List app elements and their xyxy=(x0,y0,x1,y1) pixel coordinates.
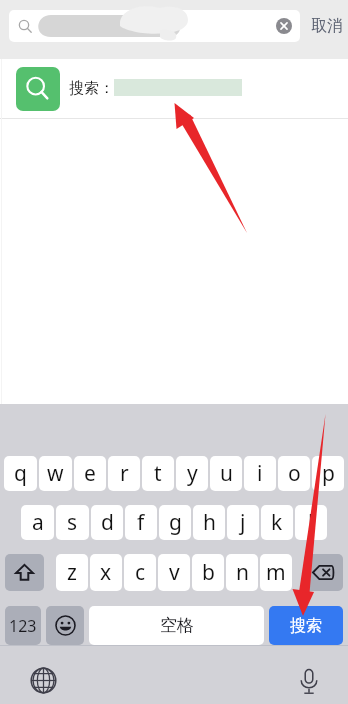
staticText: t xyxy=(154,459,162,488)
button[interactable]: y xyxy=(176,456,208,491)
button[interactable]: v xyxy=(158,554,190,591)
button[interactable]: m xyxy=(260,554,292,591)
staticText: w xyxy=(47,459,64,488)
button[interactable]: o xyxy=(278,456,310,491)
staticText: u xyxy=(220,459,233,488)
staticText: g xyxy=(169,508,182,537)
staticText: b xyxy=(202,558,215,587)
staticText: v xyxy=(169,558,180,587)
button[interactable]: 取消 xyxy=(305,10,348,42)
button[interactable]: a xyxy=(21,505,54,540)
button[interactable]: i xyxy=(244,456,276,491)
button[interactable]: Emoji xyxy=(46,606,84,645)
staticText: k xyxy=(271,508,283,537)
button[interactable]: r xyxy=(108,456,140,491)
button[interactable]: z xyxy=(56,554,88,591)
staticText: l xyxy=(308,508,314,537)
button[interactable]: h xyxy=(193,505,225,540)
button[interactable]: g xyxy=(159,505,191,540)
button[interactable]: j xyxy=(227,505,259,540)
staticText: j xyxy=(240,508,246,537)
staticText: 空格 xyxy=(160,615,194,636)
button[interactable]: e xyxy=(74,456,106,491)
staticText: r xyxy=(120,459,129,488)
button[interactable]: Shift xyxy=(5,554,44,591)
button[interactable]: k xyxy=(261,505,293,540)
button[interactable]: 搜索 xyxy=(269,606,343,645)
button[interactable]: 123 xyxy=(5,606,41,645)
staticText: f xyxy=(137,508,145,537)
button[interactable]: d xyxy=(91,505,123,540)
button[interactable]: n xyxy=(226,554,258,591)
button[interactable]: 搜索： xyxy=(0,59,348,118)
button[interactable]: b xyxy=(192,554,224,591)
staticText: q xyxy=(14,459,27,488)
staticText: o xyxy=(288,459,301,488)
staticText: p xyxy=(322,459,335,488)
staticText: x xyxy=(100,558,112,587)
staticText: e xyxy=(84,459,96,488)
button[interactable]: l xyxy=(295,505,327,540)
button[interactable]: Clear xyxy=(276,18,292,34)
staticText: h xyxy=(203,508,216,537)
staticText: 搜索 xyxy=(290,616,322,636)
button[interactable]: s xyxy=(56,505,89,540)
staticText: z xyxy=(67,558,77,587)
staticText: d xyxy=(101,508,114,537)
staticText: m xyxy=(266,558,286,587)
button[interactable]: Dictation xyxy=(296,668,322,694)
staticText: i xyxy=(257,459,263,488)
staticText: a xyxy=(32,508,44,537)
button[interactable]: p xyxy=(312,456,344,491)
button[interactable]: 空格 xyxy=(89,606,264,645)
button[interactable]: f xyxy=(125,505,157,540)
button[interactable]: w xyxy=(39,456,72,491)
staticText: c xyxy=(135,558,146,587)
staticText: y xyxy=(187,459,198,488)
button[interactable]: q xyxy=(4,456,37,491)
button[interactable]: Clear xyxy=(9,10,300,42)
button[interactable]: u xyxy=(210,456,242,491)
staticText: 123 xyxy=(9,615,37,637)
staticText: n xyxy=(236,558,249,587)
staticText: s xyxy=(67,508,78,537)
button[interactable]: c xyxy=(124,554,156,591)
staticText: 取消 xyxy=(311,16,343,36)
button[interactable]: Backspace xyxy=(304,554,343,591)
staticText: 搜索： xyxy=(69,79,114,98)
button[interactable]: x xyxy=(90,554,122,591)
button[interactable]: Change keyboard xyxy=(30,667,57,694)
button[interactable]: t xyxy=(142,456,174,491)
